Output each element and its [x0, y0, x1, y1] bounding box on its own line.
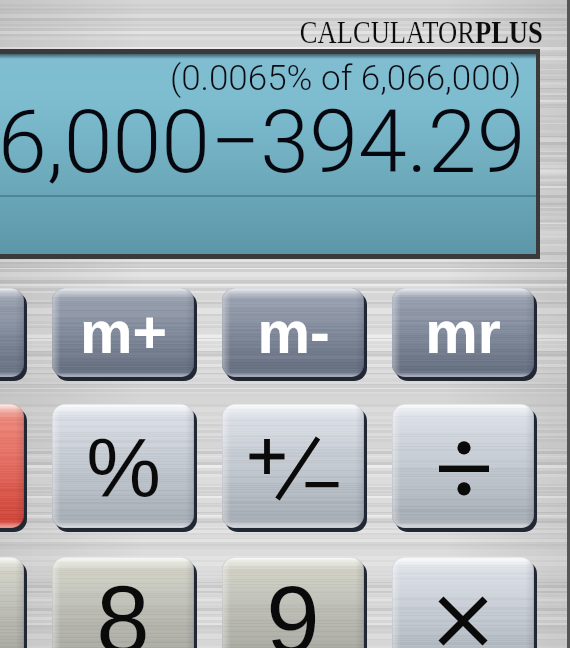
staticText: 9 — [266, 566, 320, 648]
staticText: % — [86, 421, 161, 515]
button[interactable]: Multiply — [392, 557, 539, 648]
button[interactable]: 9 — [222, 557, 369, 648]
staticText: mr — [425, 300, 501, 366]
button[interactable]: mc — [0, 288, 29, 382]
button[interactable]: (0.0065% of 6,066,000) — [0, 54, 536, 254]
button[interactable]: mr — [392, 288, 539, 382]
button[interactable]: CALCULATORPLUS — [183, 10, 543, 52]
staticText: 6,000−394.29 — [0, 90, 526, 193]
button[interactable]: m+ — [52, 288, 199, 382]
button[interactable]: Divide — [392, 404, 539, 533]
staticText: m- — [257, 300, 330, 366]
button[interactable]: m- — [222, 288, 369, 382]
button[interactable]: 7 — [0, 557, 29, 648]
staticText: (0.0065% of 6,066,000) — [170, 58, 522, 99]
button[interactable]: % — [52, 404, 199, 533]
button[interactable]: Plus minus — [222, 404, 369, 533]
staticText: m+ — [80, 300, 167, 366]
button[interactable]: 8 — [52, 557, 199, 648]
staticText: CALCULATORPLUS — [300, 14, 543, 49]
button[interactable]: C — [0, 404, 29, 533]
staticText: 8 — [96, 566, 150, 648]
